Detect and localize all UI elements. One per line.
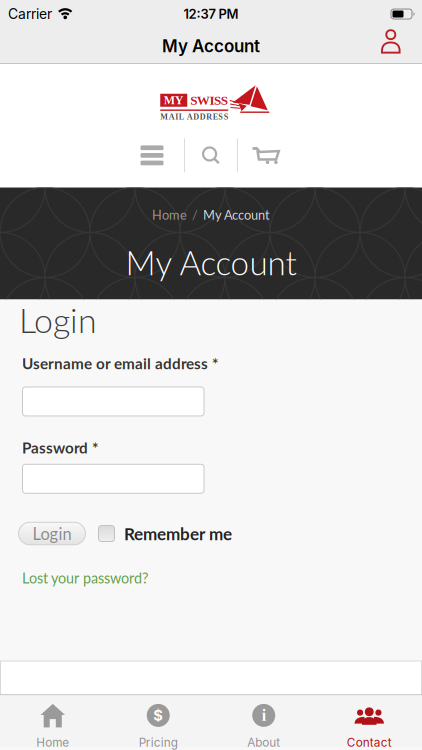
button[interactable]: Login [18, 522, 86, 545]
button[interactable]: Lost your password? [22, 569, 148, 587]
staticText: Login [19, 299, 97, 340]
staticText: My Account [162, 36, 260, 56]
button[interactable]: Home [0, 694, 105, 750]
staticText: 12:37 PM [183, 6, 238, 22]
button[interactable]: Remember me [98, 523, 232, 544]
staticText: Contact [347, 735, 392, 750]
staticText: Pricing [139, 735, 178, 750]
staticText: MAIL ADDRESS [160, 112, 229, 121]
button[interactable]: About [211, 694, 316, 750]
staticText: About [247, 735, 280, 750]
staticText: Login [32, 524, 71, 543]
button[interactable]: Username or email address [22, 386, 204, 416]
button[interactable]: Password [22, 464, 204, 494]
button[interactable]: Search [185, 138, 237, 172]
staticText: Carrier [8, 6, 52, 22]
staticText: $ [153, 706, 163, 724]
staticText: SWISS [190, 93, 228, 107]
button[interactable]: Cart [238, 138, 302, 172]
button[interactable]: Home [152, 207, 187, 222]
staticText: Home [152, 207, 187, 222]
button[interactable]: Contact [316, 694, 422, 750]
staticText: i [262, 706, 266, 724]
staticText: MY [164, 94, 184, 107]
staticText: Home [36, 735, 69, 750]
staticText: My Account [125, 242, 296, 282]
button[interactable]: Pricing [105, 694, 211, 750]
staticText: Password * [22, 438, 98, 457]
staticText: Username or email address * [22, 354, 218, 372]
staticText: Lost your password? [22, 569, 148, 587]
staticText: My Account [203, 207, 270, 222]
button[interactable]: Menu [120, 138, 184, 172]
staticText: Remember me [124, 523, 232, 544]
button[interactable]: My Account [381, 34, 422, 58]
staticText: / [192, 207, 198, 222]
